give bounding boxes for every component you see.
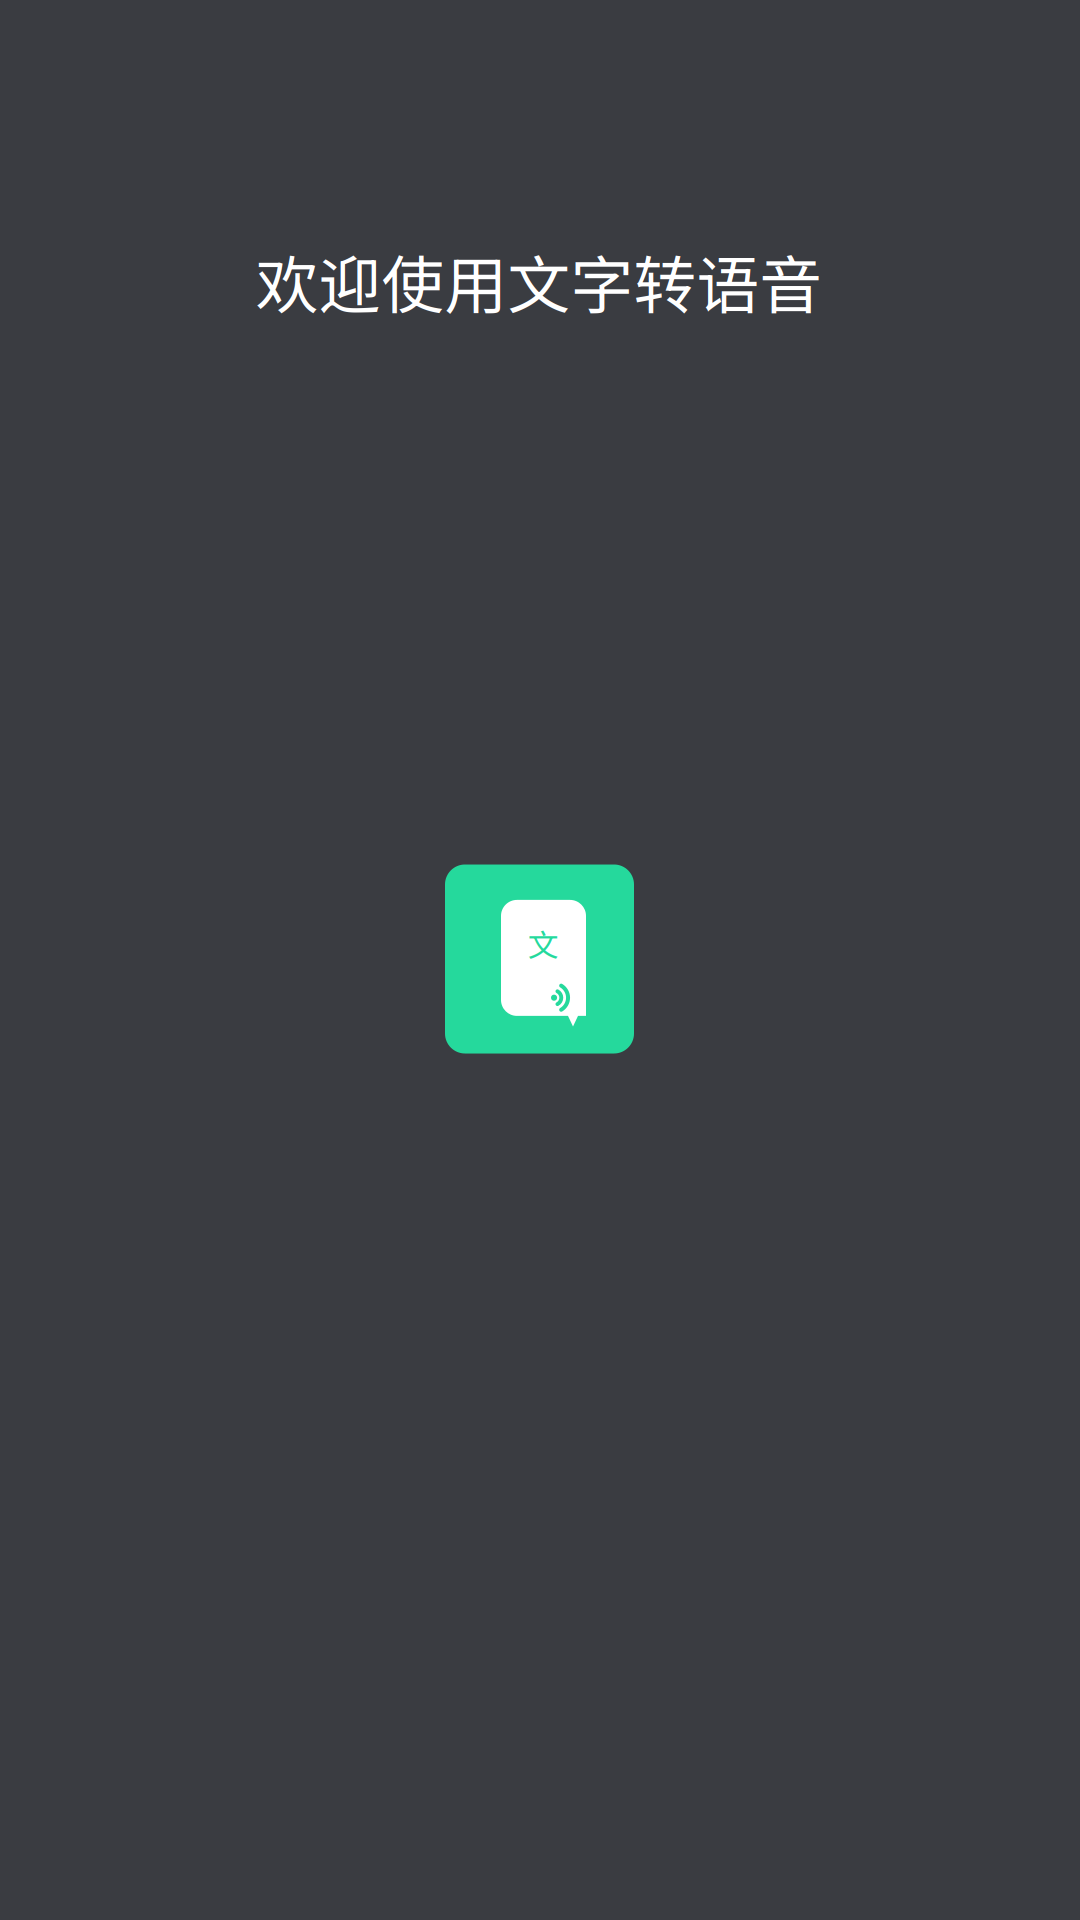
staticText: 欢迎使用文字转语音 [255,236,822,326]
staticText: 文 [528,921,559,965]
